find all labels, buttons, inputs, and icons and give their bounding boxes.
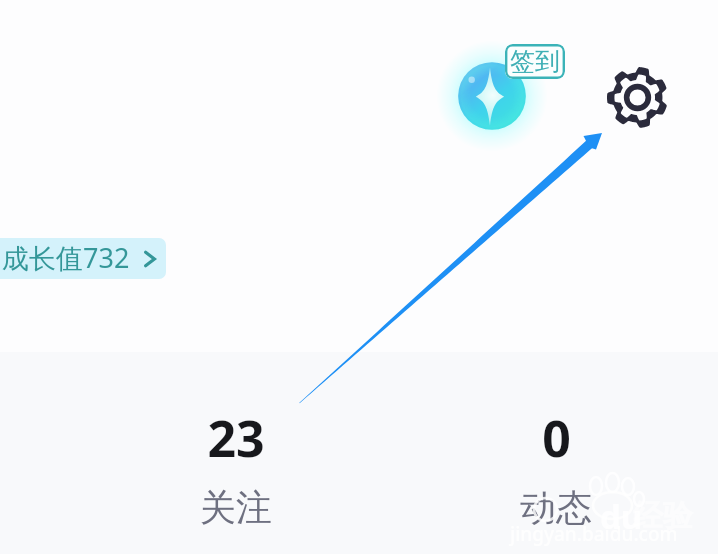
button[interactable]: 成长值732 xyxy=(0,238,166,279)
button[interactable]: Daily reward orb xyxy=(437,41,547,151)
staticText: 签到 xyxy=(510,46,560,77)
button[interactable]: 签到 xyxy=(505,44,565,79)
staticText: 关注 xyxy=(200,485,272,530)
staticText: 动态 xyxy=(520,485,592,530)
staticText: 成长值732 xyxy=(2,239,130,276)
button[interactable]: 0 xyxy=(456,404,656,530)
staticText: 0 xyxy=(542,404,571,472)
button[interactable]: 23 xyxy=(136,404,336,530)
button[interactable]: Settings xyxy=(607,67,668,128)
staticText: 23 xyxy=(207,404,265,472)
staticText: jingyan.baidu.com xyxy=(510,521,678,547)
